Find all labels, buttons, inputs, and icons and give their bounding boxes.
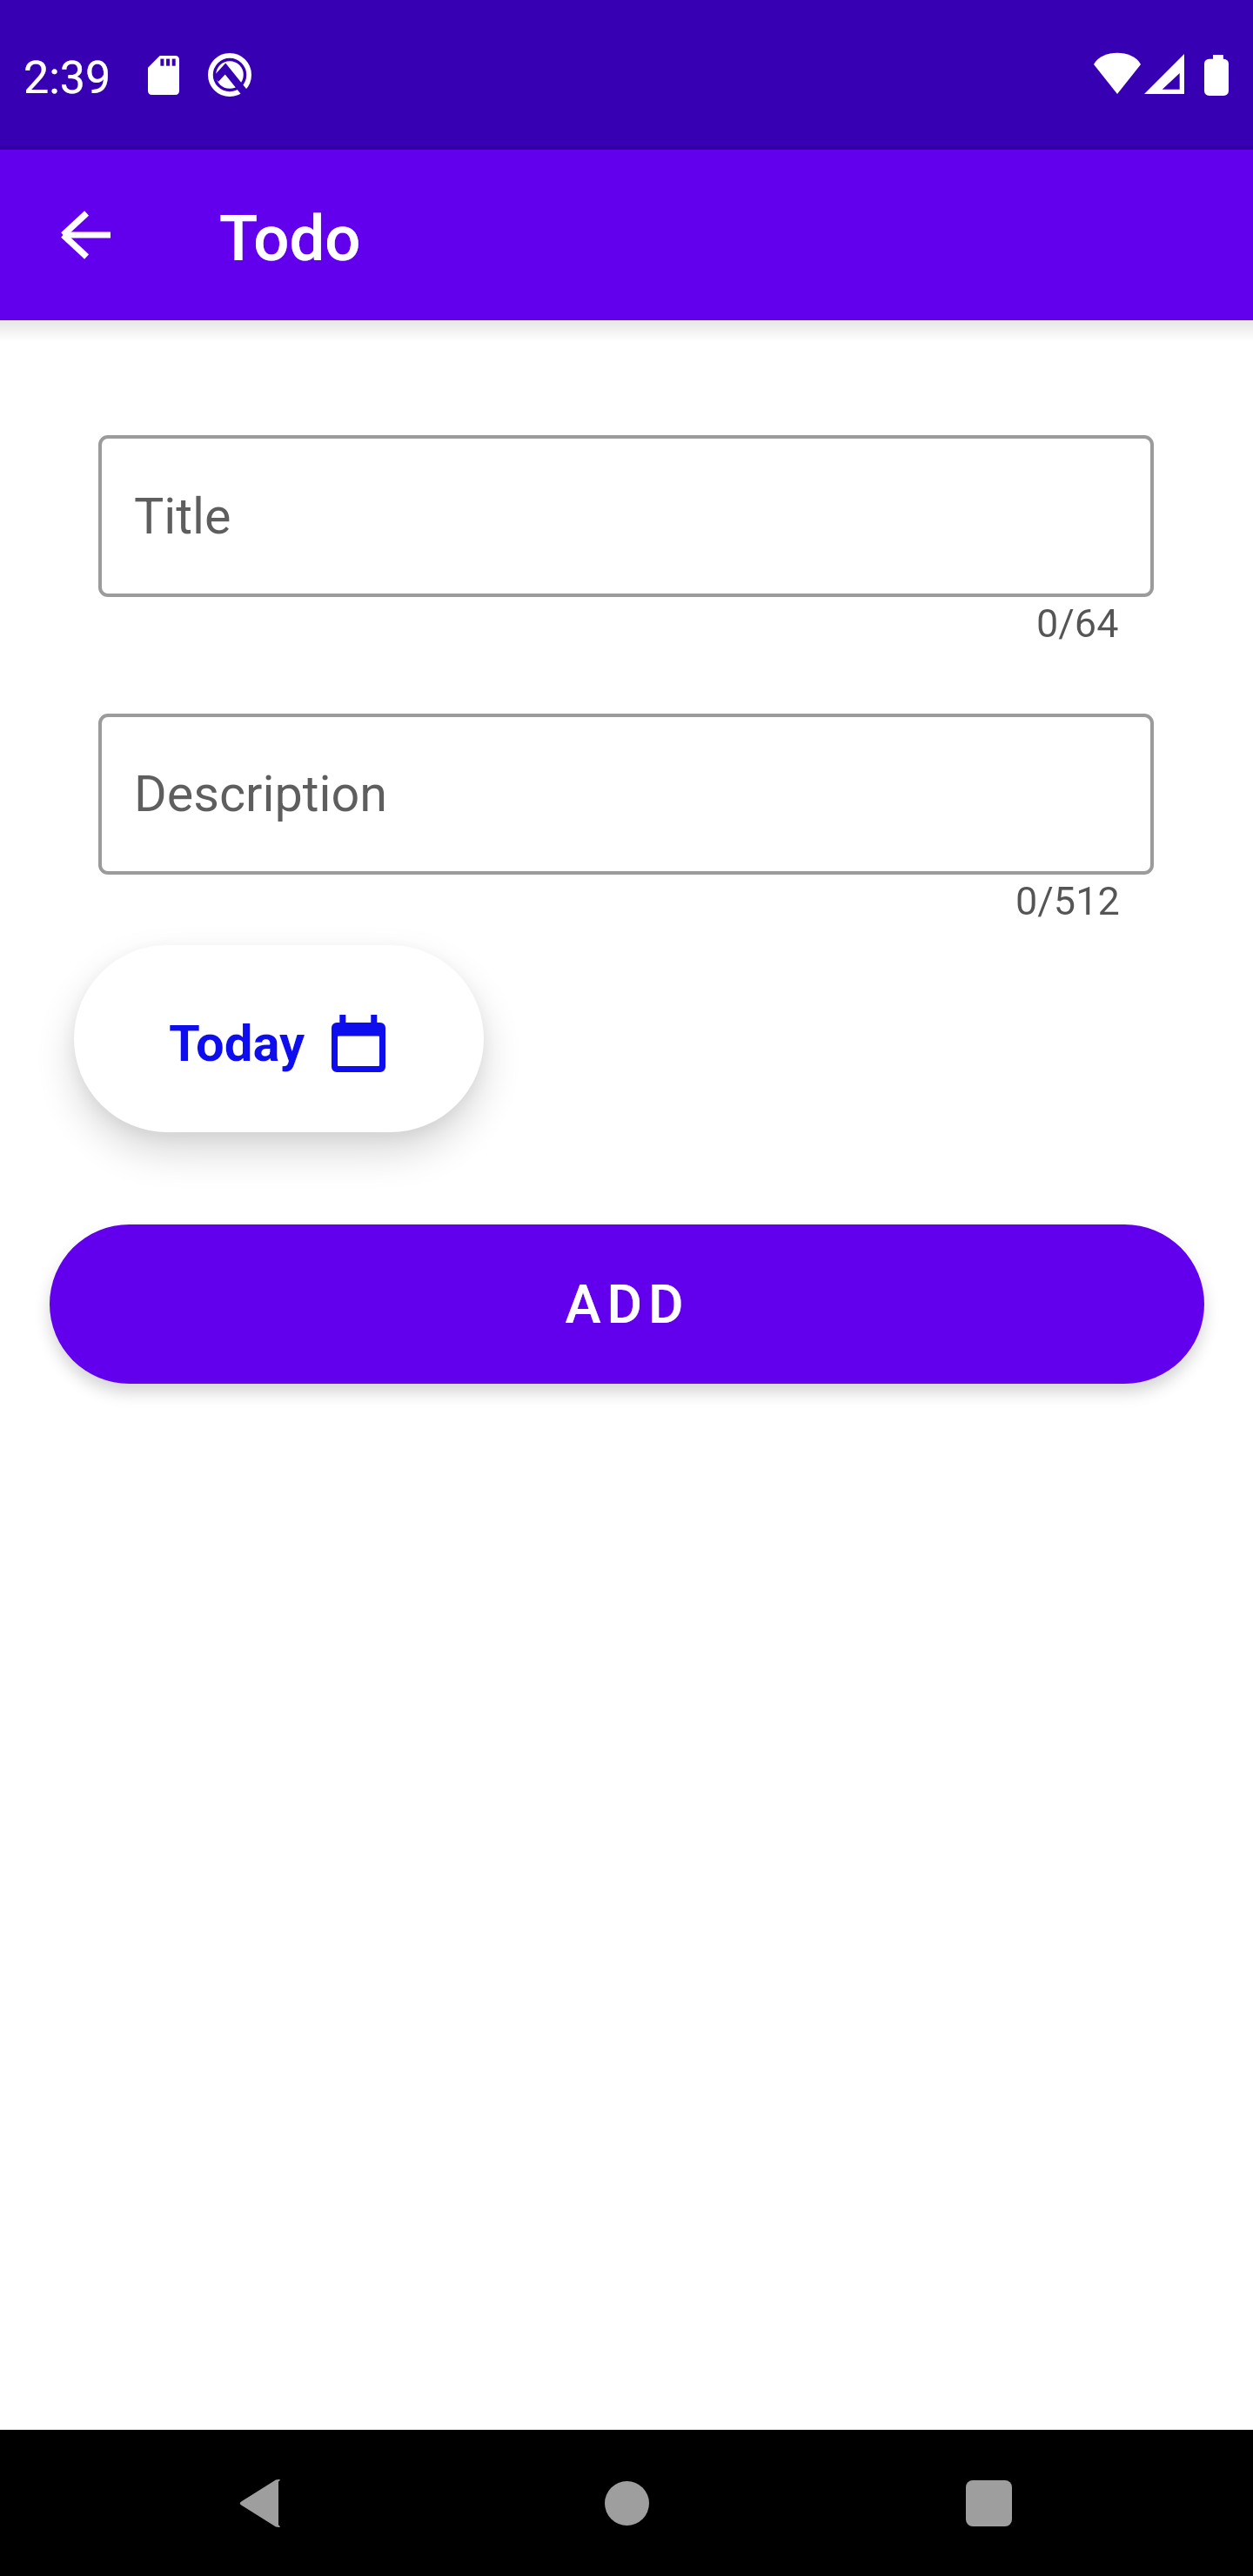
button[interactable]: Back: [188, 2430, 334, 2576]
staticText: 0/64: [1036, 600, 1119, 647]
staticText: Today: [169, 1014, 305, 1073]
staticText: 0/512: [1015, 878, 1120, 924]
button[interactable]: Today: [74, 945, 484, 1132]
button[interactable]: Title: [98, 435, 1154, 597]
staticText: Description: [134, 765, 388, 823]
button[interactable]: ADD: [50, 1224, 1204, 1384]
button[interactable]: Recent apps: [915, 2430, 1062, 2576]
button[interactable]: Description: [98, 714, 1154, 875]
button[interactable]: Back: [33, 183, 137, 287]
staticText: Todo: [219, 202, 361, 276]
staticText: Title: [134, 487, 231, 546]
button[interactable]: Home: [553, 2430, 700, 2576]
staticText: ADD: [565, 1272, 690, 1336]
staticText: 2:39: [23, 51, 111, 104]
